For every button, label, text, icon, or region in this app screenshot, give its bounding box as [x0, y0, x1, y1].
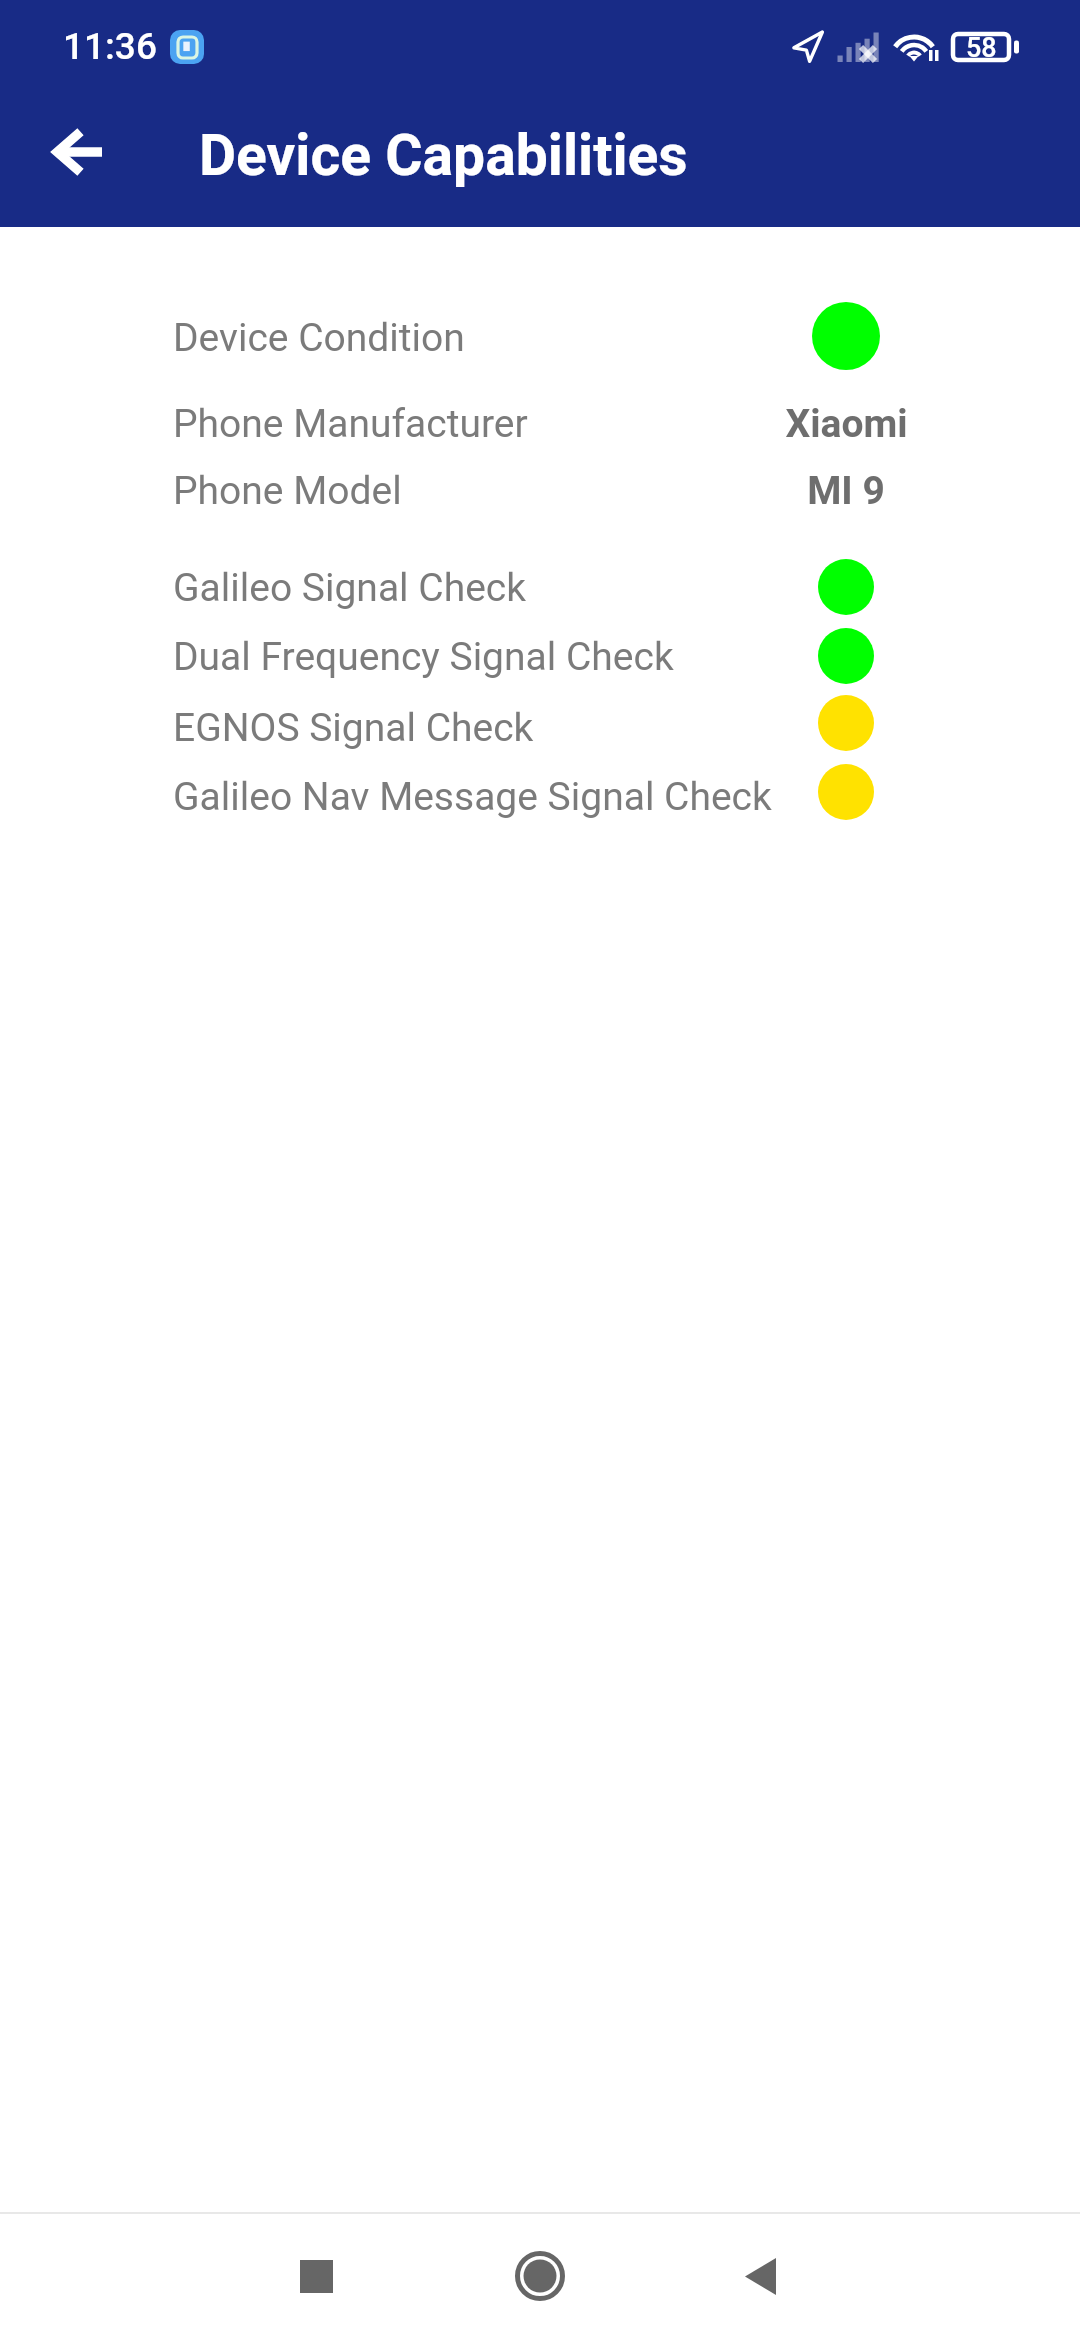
staticText: Device Condition [173, 315, 465, 361]
staticText: Xiaomi [785, 401, 908, 447]
button[interactable]: Galileo Nav Message Signal Check [0, 760, 1080, 828]
button[interactable]: EGNOS Signal Check [0, 691, 1080, 759]
staticText: 11:36 [63, 25, 157, 68]
staticText: EGNOS Signal Check [173, 705, 534, 751]
button[interactable]: Phone Manufacturer [0, 387, 1080, 455]
staticText: 58 [966, 32, 997, 62]
button[interactable]: Recent apps [256, 2212, 376, 2340]
button[interactable]: Device Condition [0, 301, 1080, 369]
staticText: Galileo Signal Check [173, 565, 526, 611]
button[interactable]: Back [700, 2212, 820, 2340]
staticText: Dual Frequency Signal Check [173, 634, 674, 680]
button[interactable]: Back [22, 97, 132, 207]
button[interactable]: Phone Model [0, 454, 1080, 522]
button[interactable]: Dual Frequency Signal Check [0, 620, 1080, 688]
button[interactable]: Galileo Signal Check [0, 551, 1080, 619]
staticText: Phone Manufacturer [173, 401, 528, 447]
staticText: Phone Model [173, 468, 402, 514]
staticText: Device Capabilities [199, 122, 688, 189]
staticText: MI 9 [807, 468, 885, 514]
staticText: Galileo Nav Message Signal Check [173, 774, 772, 820]
button[interactable]: Home [480, 2212, 600, 2340]
